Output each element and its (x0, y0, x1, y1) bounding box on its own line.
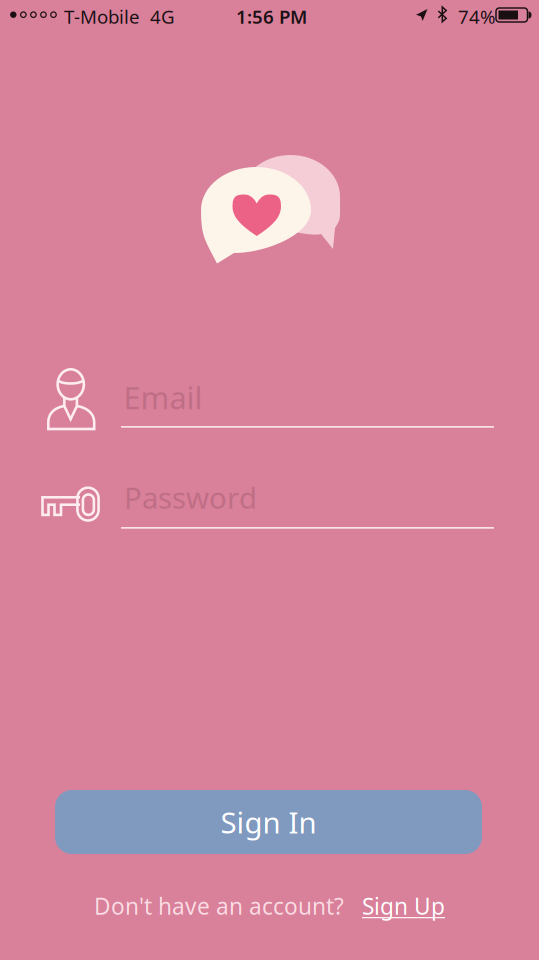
staticText: T-Mobile (64, 4, 140, 29)
button[interactable]: Sign In (55, 790, 482, 854)
staticText: Password (124, 478, 257, 517)
staticText: 74% (458, 4, 496, 29)
staticText: Don't have an account? (94, 891, 344, 921)
staticText: Sign In (220, 802, 316, 841)
staticText: Email (123, 377, 202, 418)
button[interactable]: Email (121, 381, 494, 441)
button[interactable]: Password (121, 482, 494, 542)
staticText: Sign Up (362, 891, 445, 921)
staticText: 1:56 PM (236, 4, 307, 29)
staticText: 4G (150, 4, 175, 29)
button[interactable]: Sign Up (362, 891, 445, 921)
